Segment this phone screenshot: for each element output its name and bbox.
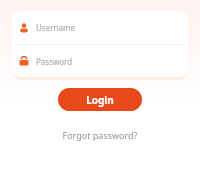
button[interactable]: Username [12, 11, 188, 44]
staticText: Forgot password? [62, 129, 138, 141]
staticText: Login [86, 93, 114, 107]
staticText: Password [36, 56, 73, 67]
staticText: Username [36, 22, 75, 33]
button[interactable]: Forgot password? [56, 126, 144, 144]
button[interactable]: Password [12, 45, 188, 77]
button[interactable]: Login [58, 88, 142, 111]
